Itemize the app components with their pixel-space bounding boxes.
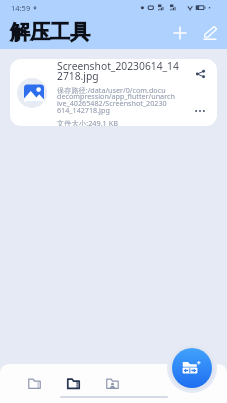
button[interactable]: Unarchived	[61, 371, 85, 395]
button[interactable]: My files	[100, 371, 124, 395]
button[interactable]: Extract archive	[172, 348, 212, 388]
button[interactable]: Edit	[197, 20, 223, 46]
staticText: 14:59	[11, 3, 31, 13]
staticText: 文件大小:249.1 KB	[57, 118, 118, 126]
button[interactable]: Share	[191, 65, 209, 83]
button[interactable]: Add	[167, 20, 193, 46]
button[interactable]: Archives	[22, 371, 46, 395]
button[interactable]: Screenshot_20230614_142718.jpg	[10, 59, 217, 126]
staticText: Screenshot_20230614_142718.jpg	[57, 59, 183, 83]
staticText: 保存路径:/data/user/0/com.docu decompression…	[57, 85, 175, 116]
staticText: 解压工具	[10, 20, 90, 45]
button[interactable]: More options	[191, 102, 209, 120]
